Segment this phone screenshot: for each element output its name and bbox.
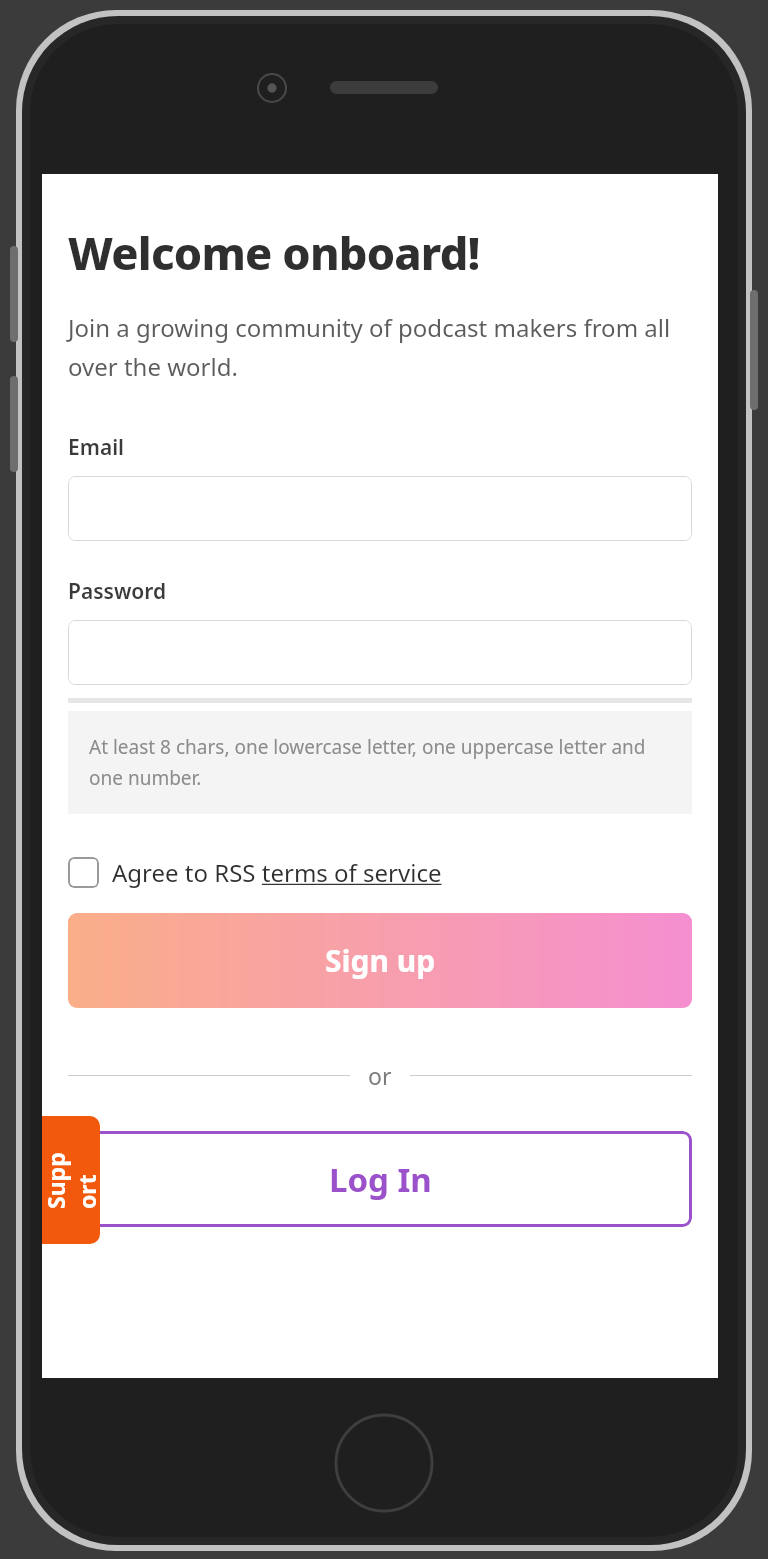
button[interactable]: Log In	[68, 1131, 692, 1227]
button[interactable]	[68, 476, 692, 541]
staticText: Welcome onboard!	[68, 222, 480, 283]
staticText: Join a growing community of podcast make…	[68, 311, 692, 383]
staticText: Support	[42, 1151, 100, 1209]
staticText: Sign up	[325, 940, 436, 981]
staticText: or	[368, 1060, 392, 1091]
staticText: At least 8 chars, one lowercase letter, …	[89, 734, 671, 791]
staticText: Log In	[329, 1157, 432, 1202]
other: Agree to terms checkbox	[68, 857, 99, 888]
button[interactable]: Support	[42, 1116, 100, 1244]
button[interactable]: Agree to terms checkbox	[68, 854, 442, 891]
staticText: Email	[68, 433, 125, 462]
button[interactable]: Sign up	[68, 913, 692, 1008]
button[interactable]	[68, 620, 692, 685]
staticText: Agree to RSS terms of service	[112, 856, 442, 889]
staticText: Password	[68, 577, 167, 606]
